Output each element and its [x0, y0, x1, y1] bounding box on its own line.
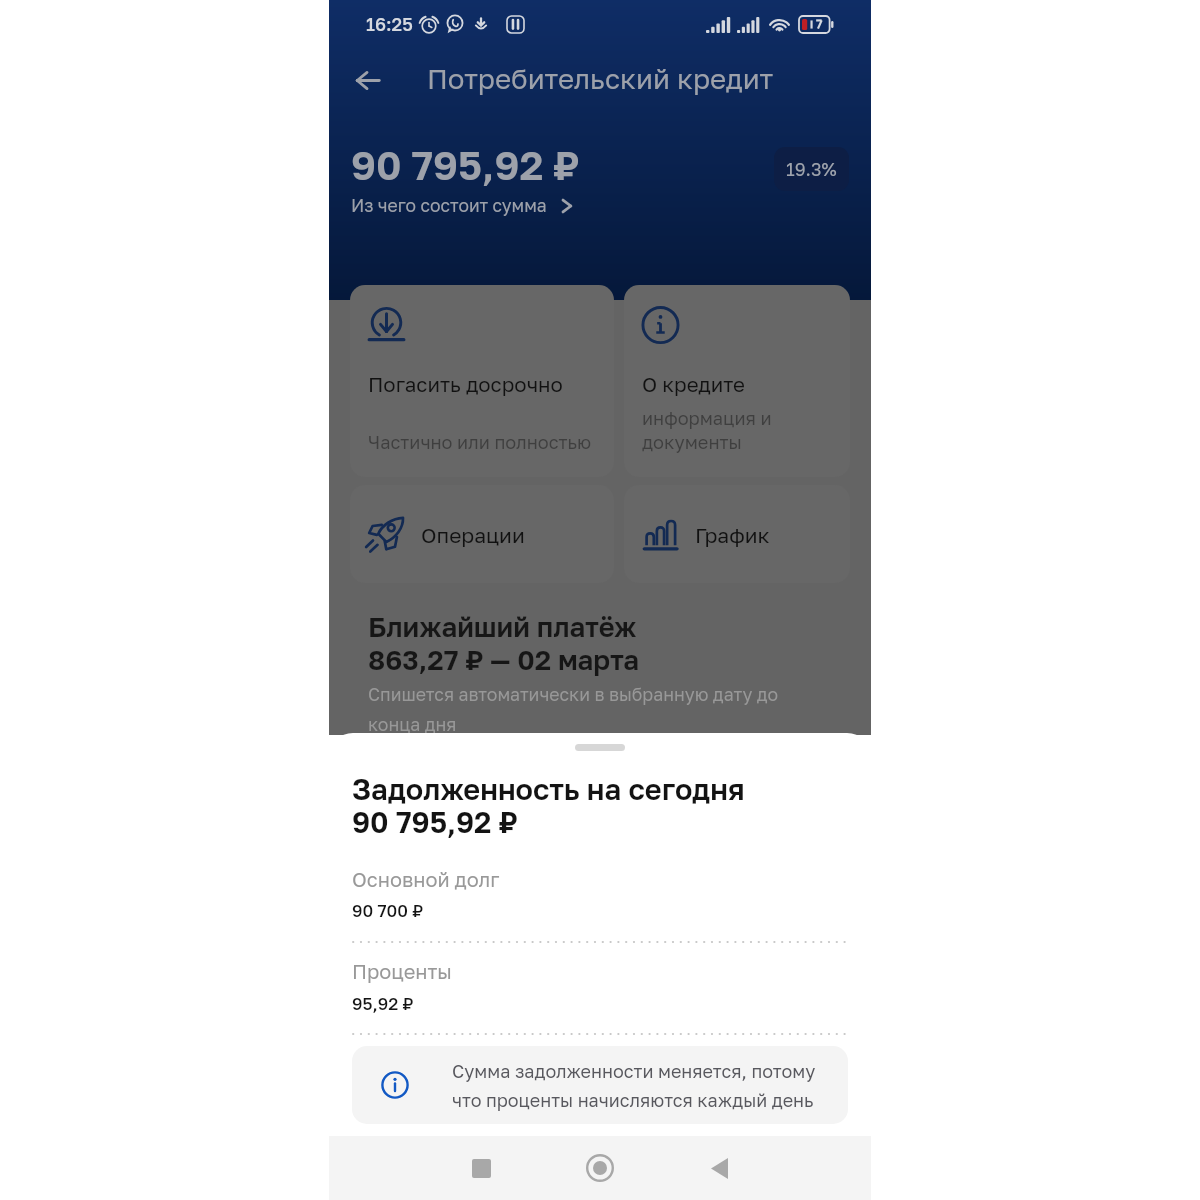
button[interactable]: График: [624, 485, 850, 583]
staticText: информация и документы: [642, 407, 772, 453]
staticText: 90 700 ₽: [352, 900, 424, 920]
staticText: Погасить досрочно: [368, 372, 563, 397]
staticText: Потребительский кредит: [427, 62, 774, 95]
button[interactable]: Операции: [350, 485, 614, 583]
staticText: Сумма задолженности меняется, потому что…: [452, 1060, 816, 1111]
staticText: 95,92 ₽: [352, 993, 414, 1013]
staticText: 19.3%: [786, 158, 837, 180]
button[interactable]: О кредите: [624, 285, 850, 477]
button[interactable]: Сумма задолженности меняется, потому что…: [352, 1046, 848, 1124]
button[interactable]: Back: [691, 1140, 747, 1196]
staticText: Основной долг: [352, 867, 500, 891]
button[interactable]: Погасить досрочно: [350, 285, 614, 477]
staticText: График: [695, 522, 770, 547]
staticText: Из чего состоит сумма: [351, 195, 547, 216]
button[interactable]: Recent apps: [453, 1140, 509, 1196]
button[interactable]: Back: [344, 56, 392, 104]
staticText: Операции: [421, 522, 525, 547]
staticText: Спишется автоматически в выбранную дату …: [368, 684, 779, 735]
staticText: Проценты: [352, 959, 452, 983]
staticText: 16:25: [366, 13, 413, 35]
staticText: Частично или полностью: [368, 431, 592, 453]
staticText: Ближайший платёж 863,27 ₽ — 02 марта: [368, 610, 640, 676]
button[interactable]: 19.3%: [774, 147, 849, 191]
staticText: 90 795,92 ₽: [351, 141, 580, 189]
button[interactable]: Home: [572, 1140, 628, 1196]
button[interactable]: Из чего состоит сумма: [351, 195, 575, 216]
staticText: Задолженность на сегодня 90 795,92 ₽: [352, 772, 745, 839]
staticText: О кредите: [642, 372, 746, 397]
